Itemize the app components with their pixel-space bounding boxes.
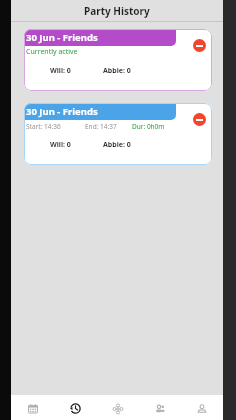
button[interactable]: Delete party [193, 39, 206, 52]
staticText: Will: 0 [50, 66, 71, 76]
button[interactable]: 30 Jun - Friends [24, 29, 212, 91]
staticText: Start: 14:36 [26, 122, 61, 131]
button[interactable]: Share [97, 395, 139, 420]
staticText: Will: 0 [50, 140, 71, 150]
staticText: Party History [84, 4, 150, 18]
staticText: 30 Jun - Friends [26, 105, 98, 118]
staticText: End: 14:37 [85, 122, 117, 131]
button[interactable]: History [54, 395, 97, 420]
staticText: Currently active [26, 47, 78, 57]
button[interactable]: 30 Jun - Friends [24, 103, 212, 165]
button[interactable]: Profile [181, 395, 223, 420]
staticText: Abbie: 0 [103, 66, 131, 76]
button[interactable]: Groups [139, 395, 181, 420]
button[interactable]: Calendar [11, 395, 54, 420]
staticText: Dur: 0h0m [132, 122, 165, 131]
button[interactable]: Delete party [193, 113, 206, 126]
staticText: Abbie: 0 [103, 140, 131, 150]
staticText: 30 Jun - Friends [26, 31, 98, 44]
